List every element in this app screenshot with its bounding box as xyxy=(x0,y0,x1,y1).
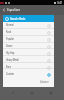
staticText: Hip Hop xyxy=(6,52,15,55)
button[interactable]: Custom xyxy=(3,71,54,78)
button[interactable]: Heavy Metal xyxy=(3,57,54,64)
staticText: Advance xyxy=(40,81,49,84)
button[interactable]: Hip Hop xyxy=(3,50,54,57)
button[interactable]: Back xyxy=(7,86,19,100)
button[interactable]: Normal xyxy=(3,22,54,29)
button[interactable]: Back xyxy=(0,5,7,15)
staticText: 3:41 xyxy=(57,1,63,5)
button[interactable]: Recents xyxy=(45,86,57,100)
staticText: Dance xyxy=(6,45,13,48)
staticText: Heavy Metal xyxy=(6,59,19,62)
staticText: Race xyxy=(6,66,12,69)
button[interactable]: Race xyxy=(3,64,54,71)
button[interactable]: Rock xyxy=(3,29,54,36)
staticText: Custom xyxy=(6,73,14,76)
staticText: Rock xyxy=(6,31,12,34)
staticText: Sound effects xyxy=(10,17,26,20)
button[interactable]: Advance xyxy=(38,80,51,85)
button[interactable]: Home xyxy=(26,86,38,100)
button[interactable]: Dance xyxy=(3,43,54,50)
staticText: Normal xyxy=(6,24,14,27)
staticText: Equalizer xyxy=(7,8,20,12)
button[interactable]: Popular xyxy=(3,36,54,43)
staticText: Popular xyxy=(6,38,14,41)
